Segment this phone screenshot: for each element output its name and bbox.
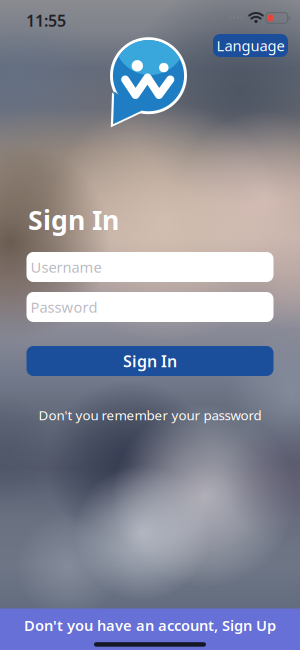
button[interactable]: Don't you remember your password [0, 407, 300, 423]
staticText: Don't you have an account, Sign Up [24, 615, 276, 635]
staticText: Sign In [28, 202, 119, 237]
staticText: Don't you remember your password [38, 406, 261, 424]
button[interactable]: Language [213, 34, 288, 57]
staticText: Username [30, 257, 101, 277]
staticText: Sign In [123, 350, 177, 372]
staticText: Language [216, 36, 284, 55]
staticText: 11:55 [26, 10, 66, 31]
button[interactable]: Don't you have an account, Sign Up [0, 608, 300, 650]
button[interactable]: Sign In [26, 346, 273, 376]
staticText: Password [30, 297, 97, 317]
